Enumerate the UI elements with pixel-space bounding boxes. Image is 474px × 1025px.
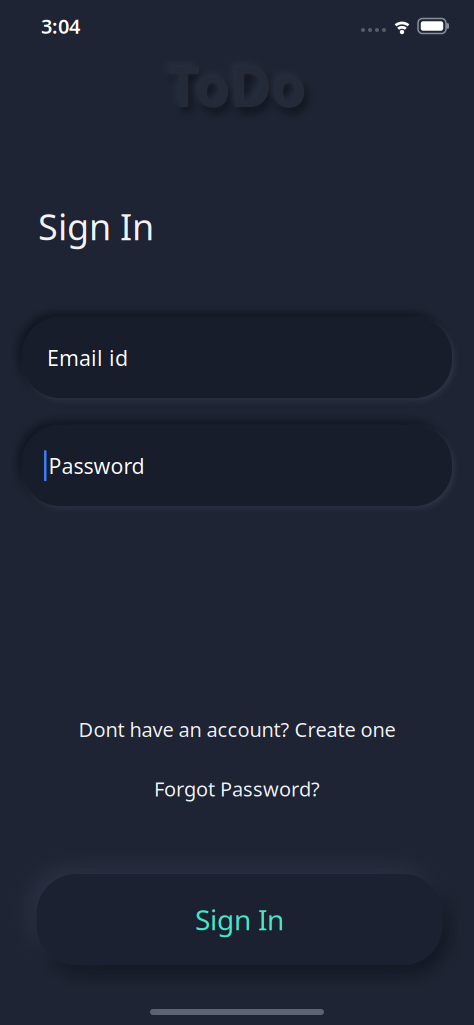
button[interactable]: Forgot Password? [154,775,320,802]
staticText: Sign In [195,901,284,938]
button[interactable]: Email id [22,317,452,398]
button[interactable]: Sign In [34,874,440,965]
staticText: Password [48,451,144,480]
staticText: ToDo [167,48,306,122]
button[interactable]: Dont have an account? Create one [78,716,395,742]
staticText: ToDo [167,48,306,122]
staticText: Email id [47,343,128,372]
staticText: Dont have an account? Create one [78,716,395,742]
button[interactable]: Password [22,425,452,506]
staticText: 3:04 [41,13,80,39]
staticText: Sign In [38,202,154,250]
staticText: Forgot Password? [154,775,320,802]
